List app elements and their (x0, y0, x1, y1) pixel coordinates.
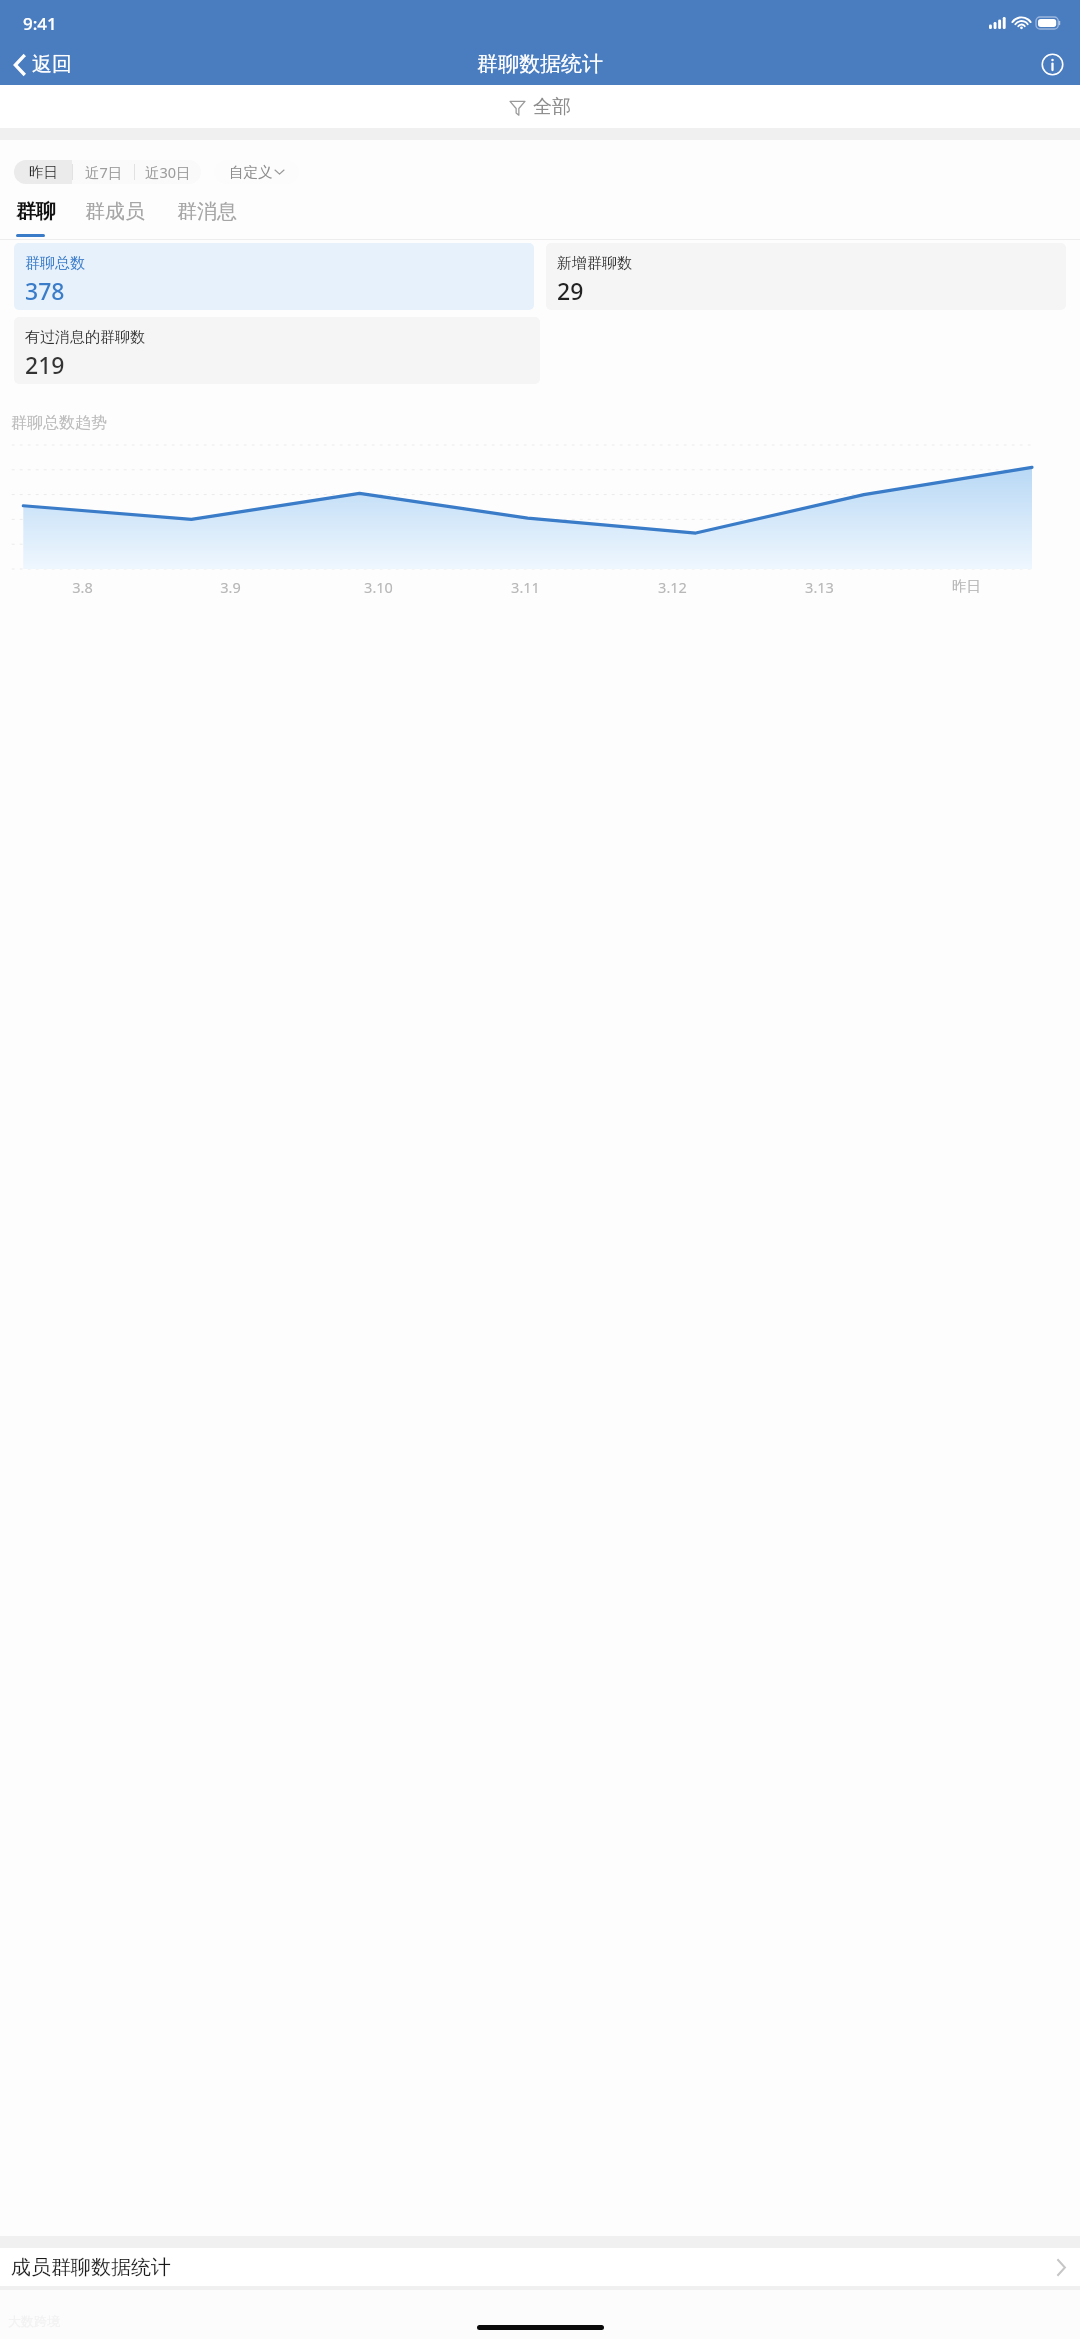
button[interactable]: 昨日 (14, 160, 72, 184)
button[interactable]: 群聊 (16, 199, 85, 224)
button[interactable]: 自定义 (214, 160, 299, 184)
button[interactable]: 有过消息的群聊数 (14, 317, 540, 384)
button[interactable]: 群成员 (85, 199, 177, 224)
button[interactable]: 全部 (495, 89, 585, 125)
staticText: 群成员 (85, 199, 145, 224)
button[interactable]: 成员群聊数据统计 (0, 2248, 1080, 2286)
button[interactable]: 近30日 (135, 160, 201, 184)
staticText: 3.11 (511, 577, 540, 597)
button[interactable]: 群消息 (177, 199, 237, 224)
staticText: 3.8 (72, 577, 93, 597)
staticText: 群消息 (177, 199, 237, 224)
staticText: 群聊 (16, 199, 56, 224)
staticText: 3.13 (805, 577, 834, 597)
button[interactable]: 新增群聊数 (546, 243, 1066, 310)
staticText: 3.10 (364, 577, 393, 597)
staticText: 昨日 (952, 577, 981, 595)
staticText: 近7日 (85, 162, 123, 182)
staticText: 全部 (533, 95, 571, 119)
staticText: 昨日 (29, 163, 58, 181)
staticText: 29 (557, 275, 584, 306)
staticText: 378 (25, 275, 65, 306)
staticText: 自定义 (229, 163, 273, 181)
button[interactable]: Info (1025, 47, 1080, 82)
staticText: 9:41 (23, 12, 57, 35)
staticText: 群聊数据统计 (477, 51, 603, 77)
staticText: 新增群聊数 (557, 254, 632, 273)
staticText: 3.12 (658, 577, 687, 597)
button[interactable]: 群聊总数 (14, 243, 534, 310)
staticText: 有过消息的群聊数 (25, 328, 145, 347)
staticText: 群聊总数趋势 (11, 413, 107, 433)
staticText: 返回 (32, 52, 72, 77)
button[interactable]: 近7日 (73, 160, 134, 184)
staticText: 近30日 (145, 162, 191, 182)
button[interactable]: 返回 (0, 48, 86, 81)
staticText: 219 (25, 349, 65, 380)
staticText: 3.9 (220, 577, 241, 597)
staticText: 群聊总数 (25, 254, 85, 273)
staticText: 成员群聊数据统计 (11, 2255, 171, 2280)
staticText: 大数跨境 (8, 2313, 60, 2329)
